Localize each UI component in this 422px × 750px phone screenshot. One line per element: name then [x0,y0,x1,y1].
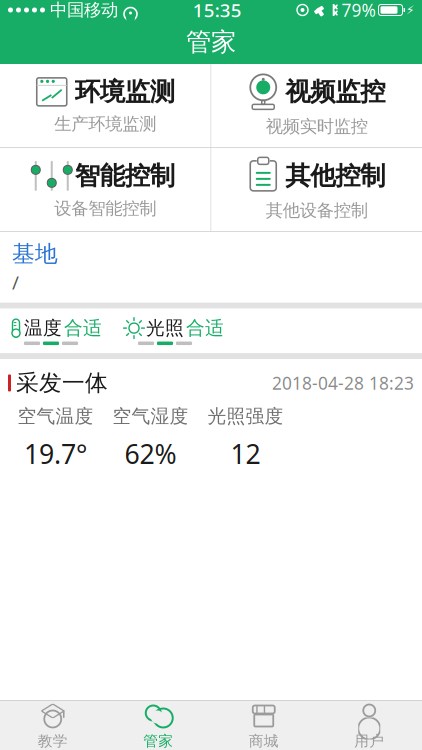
staticText: 温度 [24,317,62,339]
staticText: 62% [124,436,176,471]
staticText: 生产环境监测 [54,113,156,135]
button[interactable]: 商城 [211,697,316,750]
staticText: 合适 [186,317,224,339]
staticText: 采发一体 [16,369,108,397]
staticText: 空气温度 [17,405,93,428]
staticText: 环境监测 [75,76,175,107]
staticText: 光照 [146,317,184,339]
staticText: 其他设备控制 [266,200,368,221]
button[interactable]: 其他控制 [211,148,422,231]
staticText: ⚡︎ [406,3,414,17]
button[interactable]: 智能控制 [0,148,210,231]
staticText: 管家 [186,26,236,57]
staticText: 视频监控 [285,76,385,107]
staticText: 设备智能控制 [54,198,156,219]
staticText: 视频实时监控 [266,116,368,137]
staticText: 2018-04-28 18:23 [272,371,414,394]
staticText: 12 [230,436,260,471]
staticText: 光照强度 [207,405,283,428]
button[interactable]: 管家 [105,697,211,750]
staticText: 商城 [249,732,279,750]
button[interactable]: 用户 [316,697,422,750]
staticText: 合适 [64,317,102,339]
button[interactable]: 教学 [0,697,105,750]
staticText: 15:35 [193,0,242,22]
staticText: 79% [341,0,375,21]
button[interactable]: 环境监测 [0,64,210,147]
staticText: 中国移动 [50,0,118,21]
button[interactable]: 基地 [0,232,422,303]
button[interactable]: 视频监控 [211,64,422,147]
staticText: 智能控制 [75,160,175,191]
staticText: 其他控制 [285,160,385,191]
staticText: 用户 [354,732,384,750]
staticText: 19.7° [24,436,87,471]
staticText: 基地 [12,240,58,268]
staticText: 管家 [143,732,173,750]
staticText: 教学 [38,732,68,750]
staticText: / [12,270,19,295]
staticText: 空气湿度 [112,405,188,428]
